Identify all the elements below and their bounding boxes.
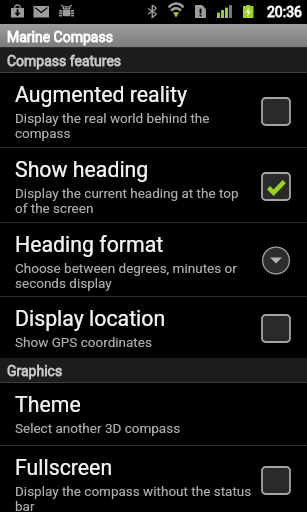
button[interactable]: Open options: [261, 246, 291, 275]
staticText: Choose between degrees, minutes or secon…: [15, 260, 237, 291]
staticText: Graphics: [7, 363, 63, 379]
button[interactable]: Fullscreen: [0, 446, 307, 512]
staticText: Fullscreen: [15, 455, 113, 480]
staticText: Display the real world behind the compas…: [15, 110, 210, 141]
button[interactable]: Show heading: [0, 148, 307, 222]
staticText: Heading format: [15, 232, 164, 257]
button[interactable]: Unchecked: [261, 466, 291, 495]
button[interactable]: Unchecked: [261, 314, 291, 343]
staticText: Compass features: [7, 53, 122, 69]
button[interactable]: Display location: [0, 297, 307, 358]
button[interactable]: Checked: [261, 172, 291, 201]
staticText: Show GPS coordinates: [15, 334, 152, 350]
button[interactable]: Heading format: [0, 223, 307, 296]
staticText: Display the compass without the status b…: [15, 483, 252, 512]
button[interactable]: Augmented reality: [0, 73, 307, 147]
staticText: Select another 3D compass: [15, 420, 181, 436]
staticText: Show heading: [15, 157, 149, 182]
staticText: Marine Compass: [7, 29, 113, 45]
staticText: Augmented reality: [15, 82, 188, 107]
staticText: Display the current heading at the top o…: [15, 185, 239, 216]
staticText: Theme: [15, 392, 81, 417]
staticText: 20:36: [267, 4, 302, 20]
button[interactable]: Unchecked: [261, 97, 291, 126]
staticText: Display location: [15, 306, 166, 331]
button[interactable]: Theme: [0, 383, 307, 445]
